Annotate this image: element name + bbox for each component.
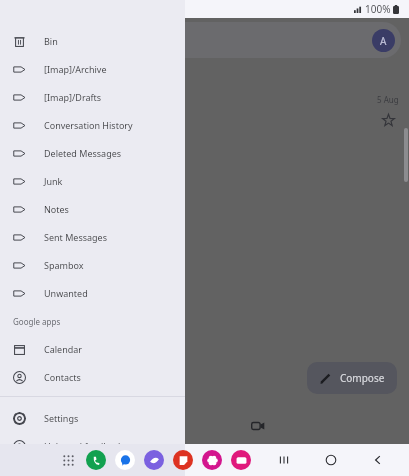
staticText: [Imap]/Drafts <box>44 91 102 103</box>
button[interactable]: [Imap]/Drafts <box>0 83 185 111</box>
staticText: Notes <box>44 203 69 215</box>
button[interactable]: Sent Messages <box>0 223 185 251</box>
button[interactable]: Contacts <box>0 363 185 391</box>
button[interactable]: [Imap]/Archive <box>0 55 185 83</box>
button[interactable]: Camera <box>231 450 251 470</box>
button[interactable]: Gallery <box>202 450 222 470</box>
staticText: Google apps <box>13 316 61 327</box>
button[interactable]: Account <box>8 22 401 58</box>
button[interactable]: Spambox <box>0 251 185 279</box>
staticText: Help and feedback <box>44 440 123 452</box>
button[interactable]: Unwanted <box>0 279 185 307</box>
button[interactable]: Compose <box>307 362 397 394</box>
button[interactable]: Settings <box>0 404 185 432</box>
button[interactable]: Back <box>367 449 389 471</box>
staticText: Unwanted <box>44 287 88 299</box>
staticText: Settings <box>44 412 79 424</box>
staticText: Spambox <box>44 259 84 271</box>
staticText: A <box>380 34 387 48</box>
staticText: [Imap]/Archive <box>44 63 107 75</box>
button[interactable]: Deleted Messages <box>0 139 185 167</box>
button[interactable]: Calendar <box>0 335 185 363</box>
staticText: Bin <box>44 35 58 47</box>
button[interactable]: Meet <box>248 416 268 436</box>
button[interactable]: Notes <box>173 450 193 470</box>
staticText: Contacts <box>44 371 81 383</box>
staticText: 5 Aug <box>377 94 399 105</box>
button[interactable]: Messages <box>115 450 135 470</box>
staticText: Compose <box>340 371 385 385</box>
staticText: Junk <box>44 175 63 187</box>
button[interactable]: Recents <box>273 449 295 471</box>
staticText: Calendar <box>44 343 82 355</box>
button[interactable]: Help and feedback <box>0 432 185 460</box>
staticText: Sent Messages <box>44 231 108 243</box>
button[interactable]: Bin <box>0 27 185 55</box>
button[interactable]: Internet <box>144 450 164 470</box>
button[interactable]: Phone <box>86 450 106 470</box>
staticText: 100% <box>365 2 391 16</box>
button[interactable]: Notes <box>0 195 185 223</box>
button[interactable]: Account <box>372 29 395 52</box>
staticText: Conversation History <box>44 119 133 131</box>
button[interactable]: Conversation History <box>0 111 185 139</box>
button[interactable]: All apps <box>60 452 76 468</box>
staticText: Deleted Messages <box>44 147 122 159</box>
button[interactable]: Home <box>320 449 342 471</box>
button[interactable]: Junk <box>0 167 185 195</box>
